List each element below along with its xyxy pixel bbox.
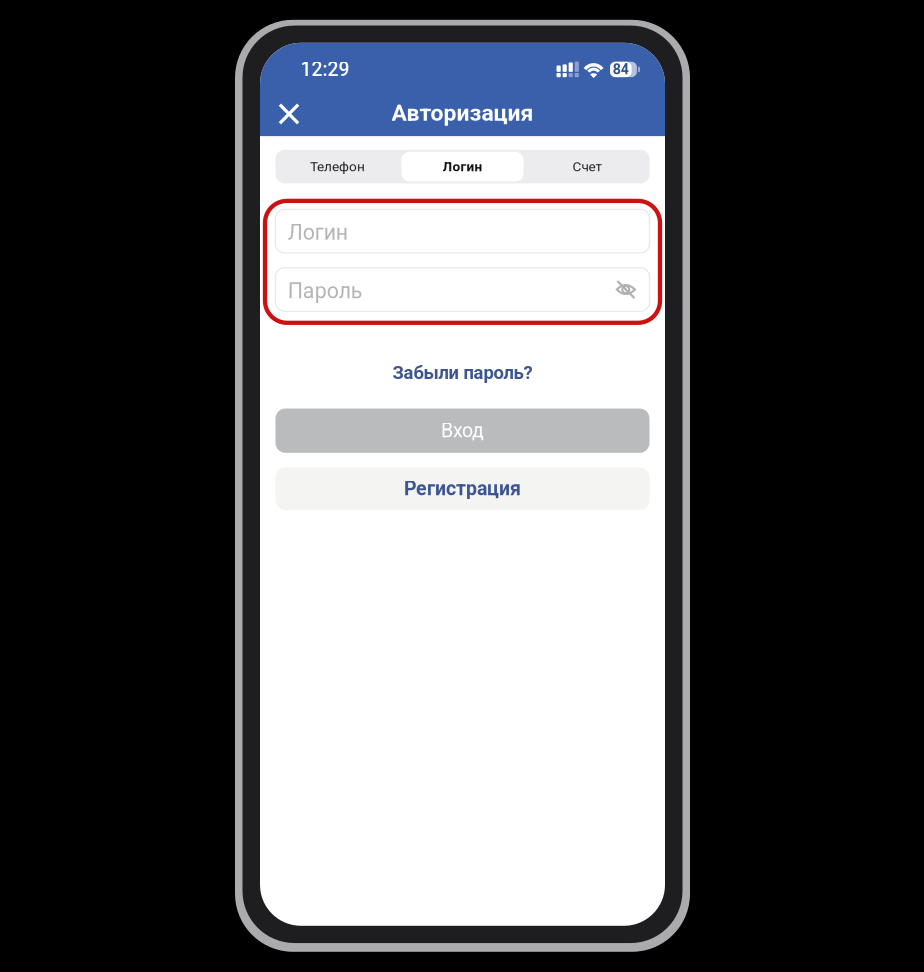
staticText: Логин <box>442 159 482 174</box>
button[interactable]: Логин <box>399 150 525 183</box>
staticText: Регистрация <box>404 477 521 500</box>
button[interactable]: Регистрация <box>275 467 649 510</box>
staticText: Забыли пароль? <box>392 362 532 384</box>
staticText: Телефон <box>310 159 365 174</box>
staticText: Пароль <box>288 278 363 303</box>
staticText: Авторизация <box>391 99 533 126</box>
button[interactable]: Забыли пароль? <box>275 353 649 393</box>
staticText: Логин <box>288 220 348 245</box>
button[interactable]: Счет <box>525 150 649 183</box>
staticText: 12:29 <box>300 58 349 81</box>
button[interactable]: Телефон <box>275 150 399 183</box>
staticText: Вход <box>441 419 484 442</box>
button[interactable]: Вход <box>275 408 649 453</box>
button[interactable]: Close <box>269 94 308 133</box>
staticText: Счет <box>572 159 602 174</box>
button[interactable]: Show password <box>615 279 636 300</box>
staticText: 84 <box>613 61 629 78</box>
